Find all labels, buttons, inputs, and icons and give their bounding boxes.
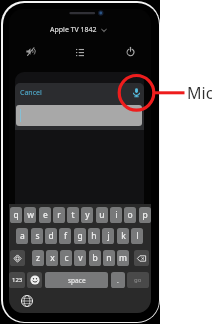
button[interactable]: y [81,207,93,223]
staticText: i [115,209,118,221]
staticText: s [35,230,40,242]
button[interactable]: Space [45,272,108,288]
button[interactable]: Mute [23,44,37,58]
staticText: d [48,230,54,242]
staticText: z [36,252,40,264]
staticText: go [134,276,142,284]
staticText: u [99,209,105,221]
button[interactable]: s [31,228,43,244]
button[interactable]: Emoji [27,272,42,288]
staticText: space [68,276,86,285]
staticText: 123 [12,276,23,284]
button[interactable] [16,105,142,126]
staticText: j [107,230,110,242]
button[interactable]: p [139,207,151,223]
staticText: o [127,209,133,221]
staticText: m [119,252,127,264]
staticText: Apple TV 1842 [50,25,97,34]
staticText: h [91,230,97,242]
staticText: r [57,209,61,221]
button[interactable]: Cancel [20,87,42,98]
button[interactable]: e [39,207,51,223]
button[interactable]: r [53,207,65,223]
button[interactable]: i [110,207,122,223]
button[interactable]: Numbers [9,272,25,288]
button[interactable]: f [59,228,71,244]
staticText: Mic [187,82,212,104]
button[interactable]: n [103,250,115,266]
button[interactable]: a [16,228,28,244]
staticText: q [13,209,19,221]
staticText: Cancel [20,88,42,98]
staticText: c [64,252,69,264]
staticText: l [136,230,139,242]
button[interactable]: z [32,250,44,266]
staticText: v [78,252,83,264]
staticText: k [121,230,126,242]
staticText: a [20,230,25,242]
button[interactable]: l [131,228,143,244]
button[interactable]: Mic [130,86,143,99]
staticText: y [85,209,90,221]
button[interactable]: Period [111,272,125,288]
button[interactable]: Backspace [134,250,149,266]
button[interactable]: b [89,250,101,266]
staticText: w [27,209,34,221]
staticText: g [77,230,83,242]
button[interactable]: w [24,207,36,223]
staticText: p [142,209,148,221]
staticText: x [50,252,55,264]
staticText: . [117,276,119,285]
button[interactable]: o [124,207,136,223]
button[interactable]: Apple TV 1842 [50,25,107,34]
staticText: t [71,209,75,221]
button[interactable]: d [45,228,57,244]
button[interactable]: u [96,207,108,223]
button[interactable]: x [46,250,58,266]
button[interactable]: k [117,228,129,244]
button[interactable]: g [74,228,86,244]
button[interactable]: q [10,207,22,223]
button[interactable]: v [74,250,86,266]
staticText: n [106,252,112,264]
staticText: b [92,252,98,264]
button[interactable]: Change keyboard [20,294,33,307]
button[interactable]: t [67,207,79,223]
button[interactable]: m [117,250,129,266]
button[interactable]: j [102,228,114,244]
button[interactable]: Menu [73,45,87,59]
button[interactable]: Power [123,44,137,58]
button[interactable]: Go [127,272,149,288]
button[interactable]: Shift [10,250,25,266]
button[interactable]: c [60,250,72,266]
staticText: e [43,209,48,221]
button[interactable]: h [88,228,100,244]
staticText: f [64,230,67,242]
